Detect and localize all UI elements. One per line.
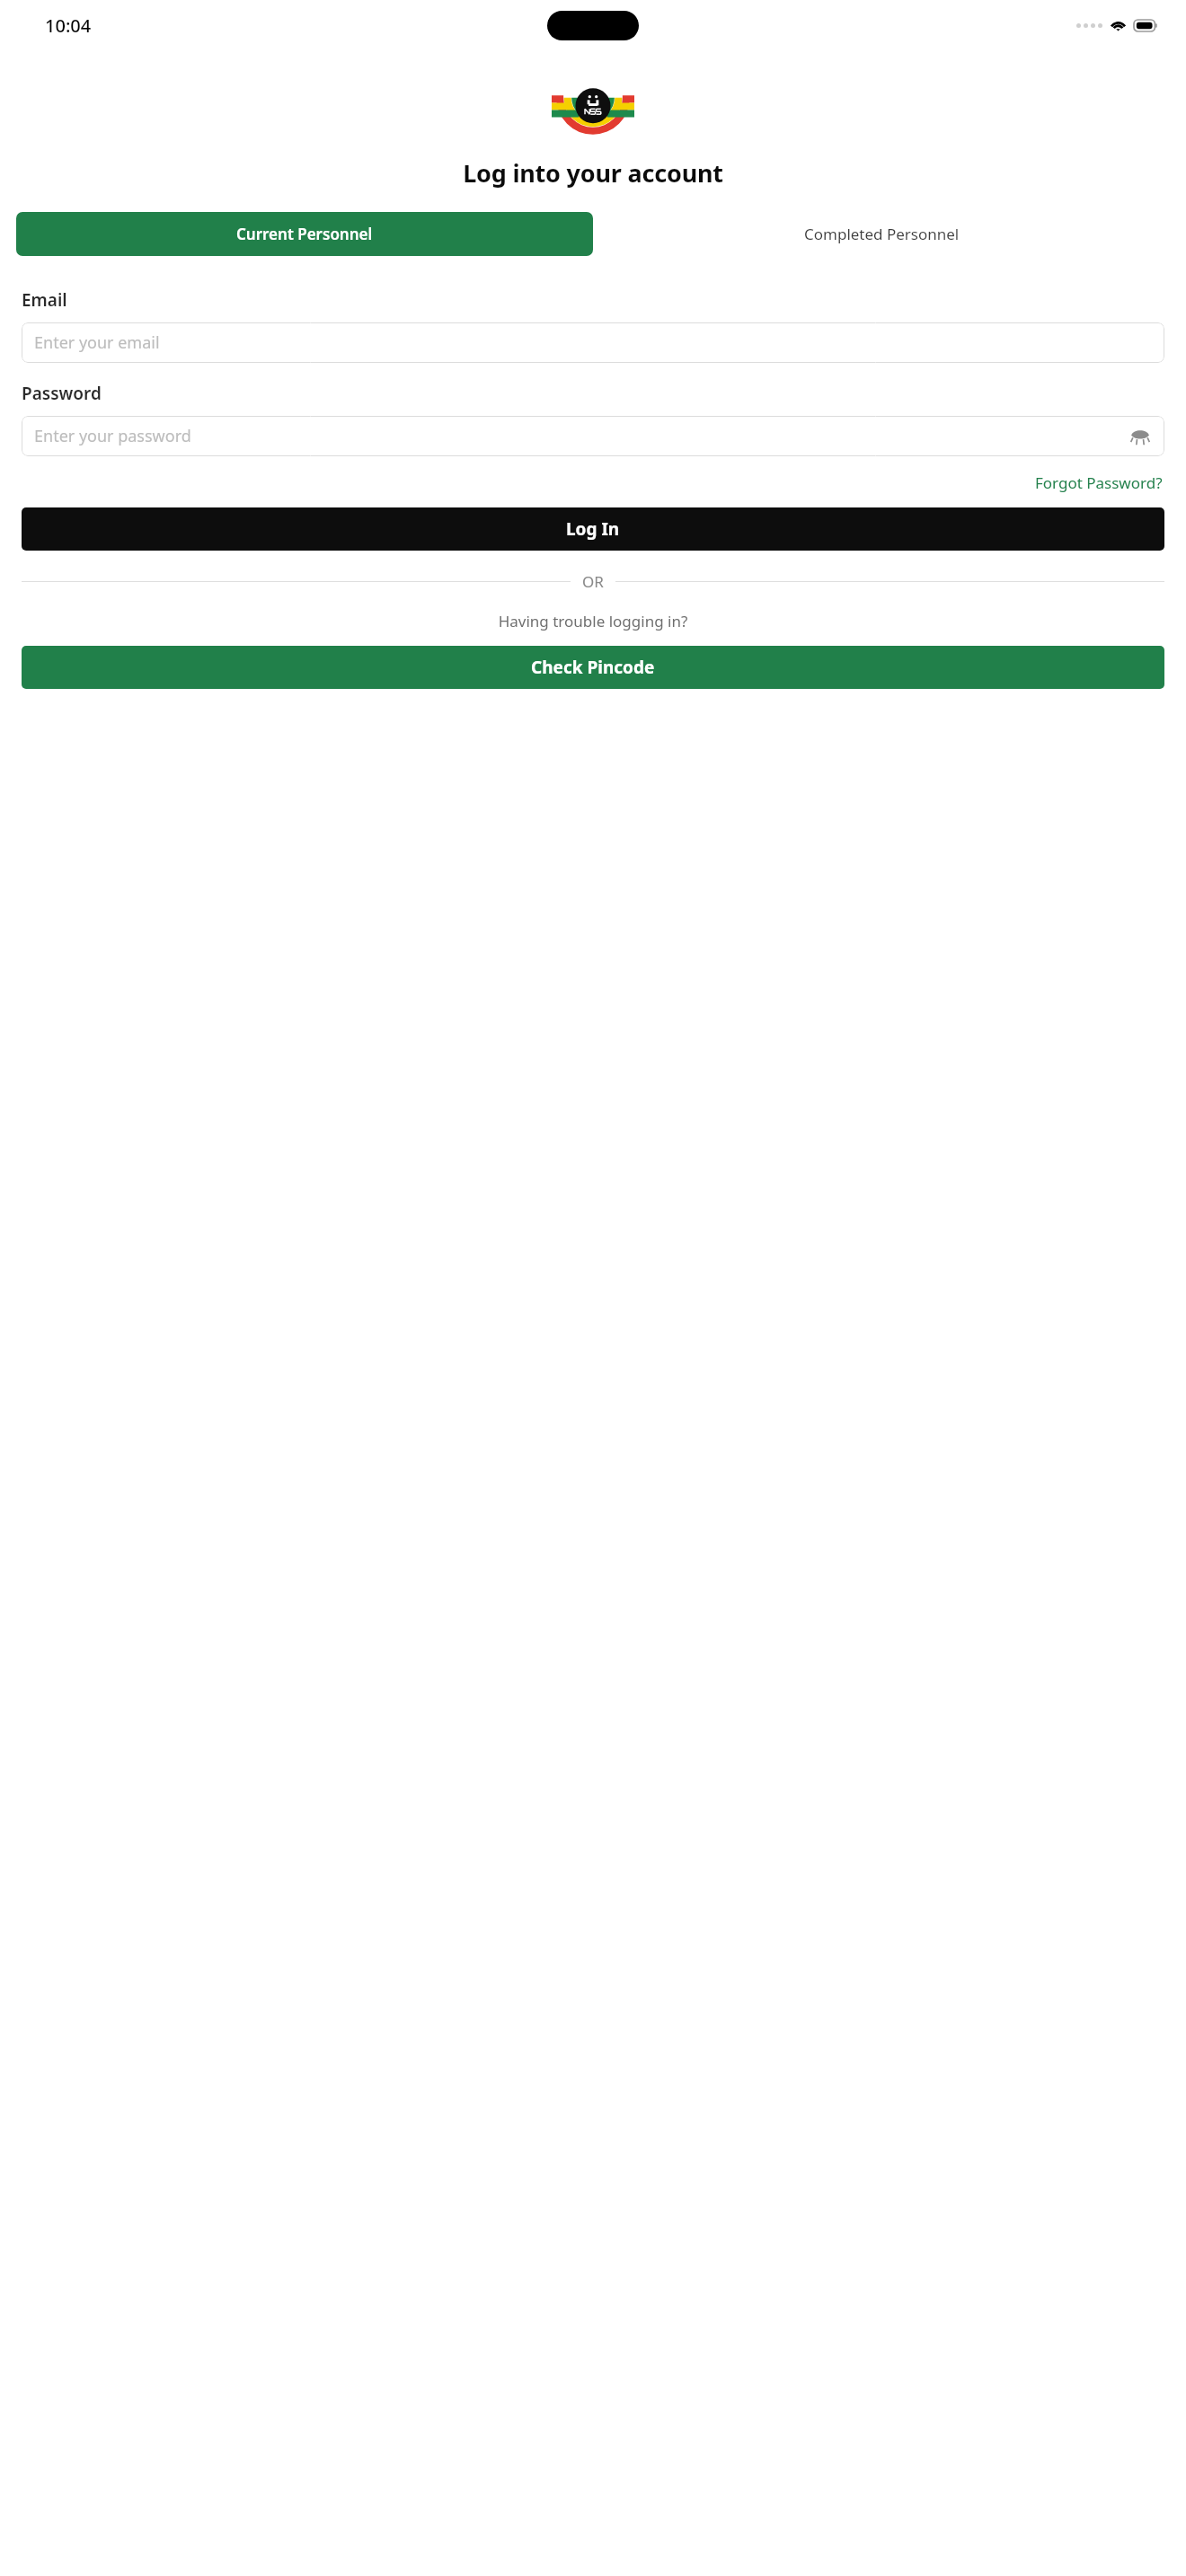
staticText: Log into your account	[0, 156, 1186, 190]
staticText: Log In	[566, 517, 620, 541]
staticText: Check Pincode	[531, 656, 655, 679]
button[interactable]: Enter your password	[22, 416, 1164, 456]
staticText: Email	[22, 288, 67, 312]
button[interactable]: Forgot Password?	[1033, 471, 1164, 495]
button[interactable]: Enter your email	[22, 322, 1164, 363]
staticText: OR	[582, 571, 604, 592]
button[interactable]: Show password	[1128, 425, 1152, 448]
staticText: Forgot Password?	[1035, 472, 1163, 493]
button[interactable]: Current Personnel	[16, 212, 593, 256]
staticText: Current Personnel	[236, 224, 373, 244]
button[interactable]: Completed Personnel	[593, 212, 1170, 256]
button[interactable]: Log In	[22, 507, 1164, 551]
staticText: Completed Personnel	[804, 224, 960, 244]
staticText: Enter your email	[34, 331, 160, 354]
staticText: 10:04	[45, 13, 92, 38]
button[interactable]: Check Pincode	[22, 646, 1164, 689]
staticText: Having trouble logging in?	[22, 611, 1164, 631]
staticText: Enter your password	[34, 425, 191, 447]
staticText: Password	[22, 382, 102, 405]
